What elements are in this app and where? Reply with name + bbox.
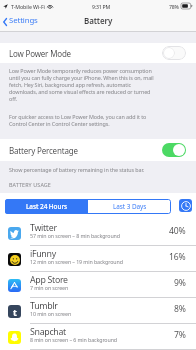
staticText: 8% [174,303,186,315]
staticText: For quicker access to Low Power Mode, yo… [9,113,157,127]
button[interactable]: Battery usage over time [179,199,192,212]
staticText: Low Power Mode [9,48,71,59]
staticText: 78% [169,3,179,10]
button[interactable]: iFunny [0,246,196,272]
button[interactable]: Snapchat [0,324,196,350]
button[interactable]: t [0,298,196,324]
staticText: 10 min on screen [30,310,72,317]
staticText: 7 min on screen [30,284,69,291]
staticText: Battery [84,15,113,26]
button[interactable]: Low Power Mode [0,43,196,63]
staticText: Last 24 Hours [26,202,68,211]
staticText: 9% [174,277,186,289]
staticText: t [13,306,17,318]
staticText: T-Mobile Wi-Fi [11,3,45,10]
staticText: Tumblr [30,300,58,312]
button[interactable]: Twitter [0,220,196,246]
staticText: 16% [169,251,186,263]
staticText: 12 min on screen – 19 min background [30,258,123,265]
staticText: Battery Percentage [9,145,78,156]
button[interactable]: App Store [0,272,196,298]
staticText: BATTERY USAGE [9,181,51,188]
staticText: iFunny [30,248,56,260]
staticText: 9:31 PM [92,3,111,10]
staticText: Snapchat [30,326,66,338]
button[interactable]: Settings [0,14,44,29]
staticText: 8 min on screen – 6 min background [30,336,117,343]
button[interactable]: Battery Percentage [0,139,196,161]
staticText: Last 3 Days [113,202,147,211]
staticText: Show percentage of battery remaining in … [9,166,157,173]
staticText: 7% [174,329,186,341]
button[interactable]: Last 24 Hours [5,199,88,214]
staticText: App Store [30,274,68,286]
staticText: Low Power Mode temporarily reduces power… [9,67,157,102]
staticText: 57 min on screen – 8 min background [30,232,120,239]
staticText: 40% [169,225,186,237]
staticText: Settings [9,15,38,26]
button[interactable]: Last 3 Days [88,199,171,214]
staticText: Twitter [30,222,57,234]
